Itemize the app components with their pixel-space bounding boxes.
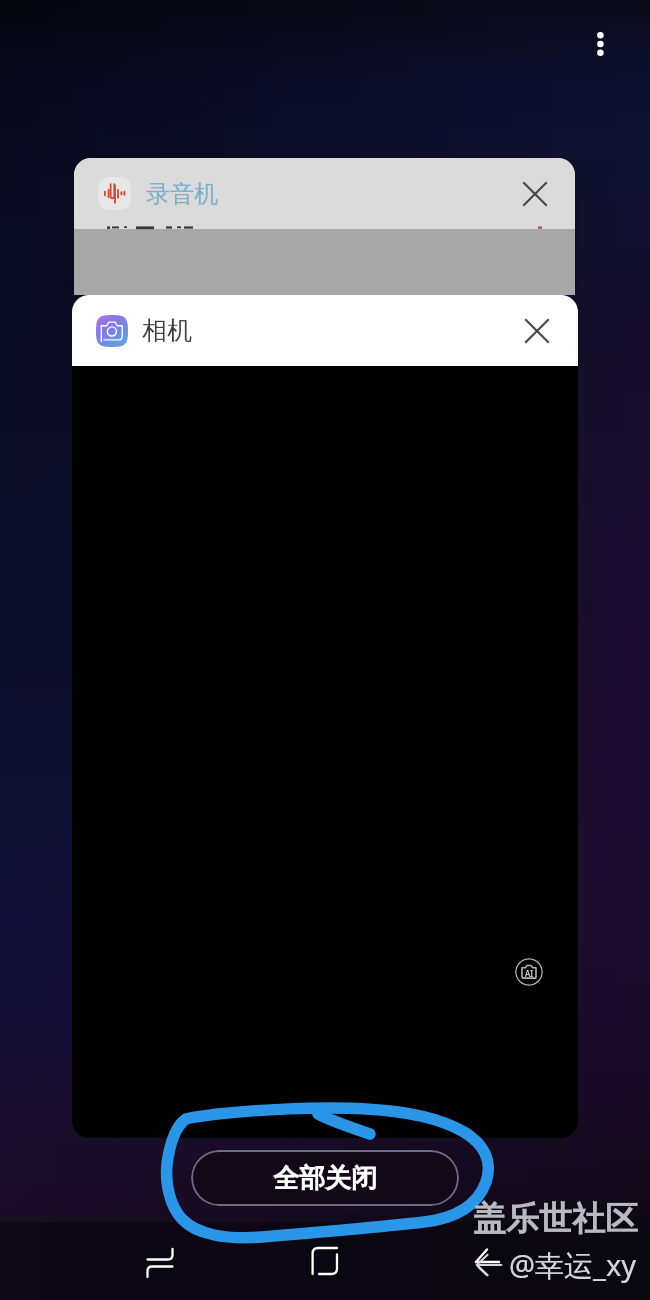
staticText: AI xyxy=(525,968,534,979)
button[interactable]: Recents xyxy=(128,1230,192,1294)
button[interactable]: 相机 xyxy=(72,295,578,1138)
staticText: @幸运_xy xyxy=(509,1245,637,1285)
button[interactable]: Close 录音机 xyxy=(507,166,563,222)
staticText: 盖乐世社区 xyxy=(473,1198,638,1240)
button[interactable]: Back xyxy=(457,1229,521,1293)
button[interactable]: 全部关闭 xyxy=(191,1150,459,1206)
button[interactable]: 录音机 xyxy=(74,158,575,295)
button[interactable]: More options xyxy=(574,18,626,70)
button[interactable]: Home xyxy=(293,1229,357,1293)
button[interactable]: Close 相机 xyxy=(509,303,565,359)
staticText: 相机 xyxy=(142,315,192,346)
staticText: 录音机 xyxy=(146,179,218,209)
staticText: 全部关闭 xyxy=(273,1162,377,1195)
button[interactable]: Scene optimizer xyxy=(515,958,543,986)
